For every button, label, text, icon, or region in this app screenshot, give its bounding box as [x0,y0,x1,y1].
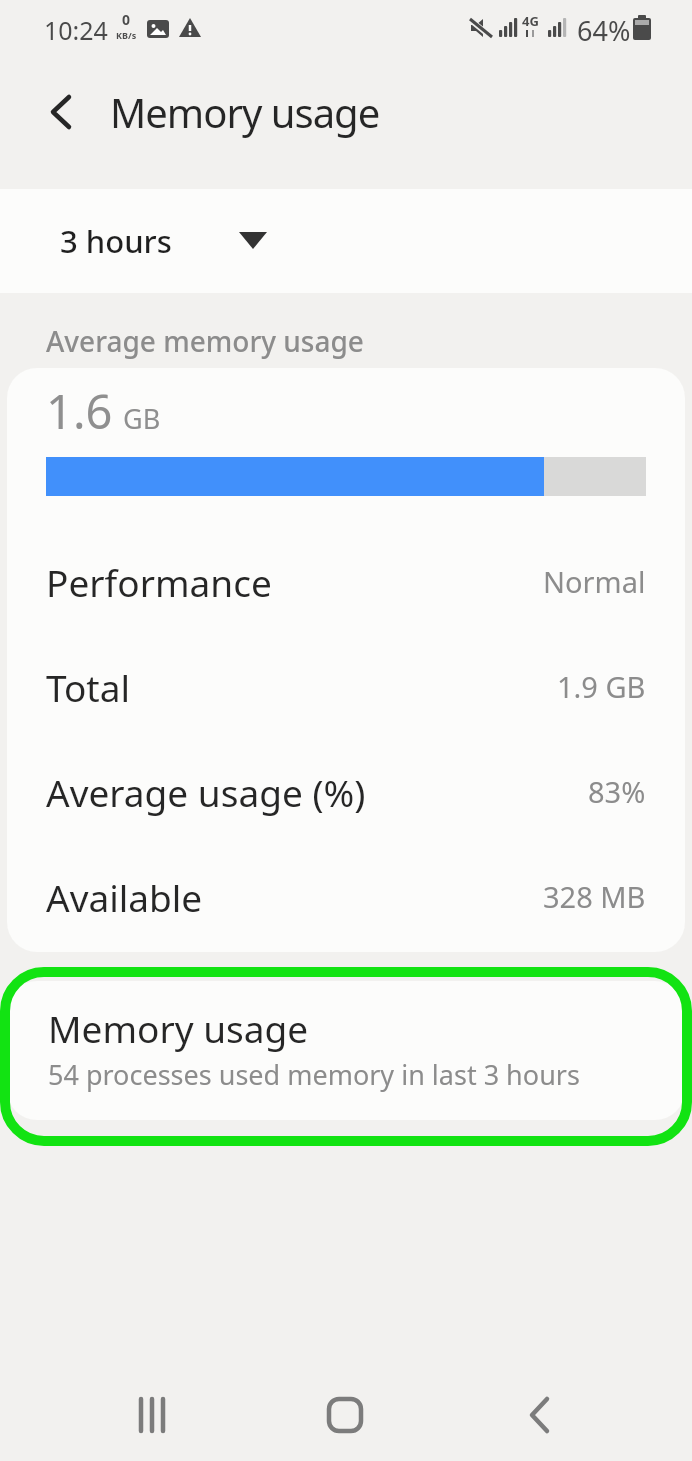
staticText: KB/s [116,29,137,41]
button[interactable]: Average usage (%) [46,739,646,844]
staticText: 54 processes used memory in last 3 hours [48,1056,580,1093]
staticText: 0 [122,10,131,29]
staticText: Total [46,662,131,712]
button[interactable] [461,1376,692,1461]
staticText: 4G [522,12,539,30]
staticText: 328 MB [543,877,646,916]
staticText: Average memory usage [46,322,364,360]
button[interactable] [38,89,84,135]
staticText: 10:24 [44,13,108,47]
staticText: Normal [543,562,646,601]
staticText: Performance [46,557,272,607]
button[interactable]: 3 hours [60,189,290,293]
staticText: GB [123,400,161,437]
button[interactable]: Available [46,844,646,949]
staticText: 83% [588,772,646,811]
staticText: 1.9 GB [557,667,646,706]
staticText: Memory usage [48,1003,309,1053]
staticText: 3 hours [60,220,172,262]
staticText: 64% [577,12,631,49]
staticText: Average usage (%) [46,767,366,817]
button[interactable]: Performance [46,529,646,634]
staticText: Memory usage [110,85,380,139]
button[interactable]: Total [46,634,646,739]
button[interactable]: Memory usage [7,981,685,1120]
staticText: 1.6 [46,379,113,443]
staticText: Available [46,872,203,922]
button[interactable] [230,1376,461,1461]
button[interactable] [0,1376,230,1461]
